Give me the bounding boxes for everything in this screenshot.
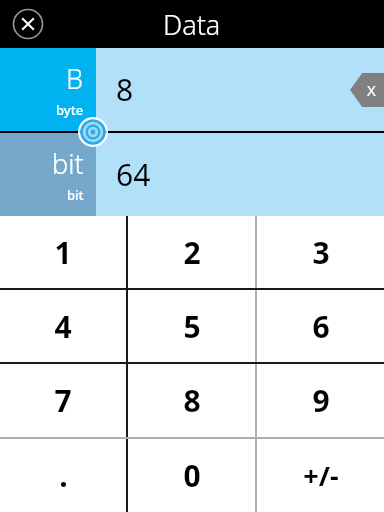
button[interactable]: 0 xyxy=(128,439,255,512)
button[interactable]: Swap units xyxy=(78,117,108,147)
button[interactable]: Delete xyxy=(350,73,384,107)
button[interactable]: 7 xyxy=(0,364,126,437)
button[interactable]: 9 xyxy=(257,364,384,437)
staticText: 5 xyxy=(183,306,201,347)
staticText: bit xyxy=(52,145,84,182)
staticText: 7 xyxy=(54,380,72,421)
staticText: 1 xyxy=(54,232,72,273)
button[interactable]: 4 xyxy=(0,290,126,362)
staticText: X xyxy=(367,80,376,100)
staticText: 64 xyxy=(116,154,151,195)
staticText: +/- xyxy=(303,457,339,494)
button[interactable]: . xyxy=(0,439,126,512)
button[interactable]: 8 xyxy=(128,364,255,437)
staticText: B xyxy=(66,60,84,97)
staticText: 6 xyxy=(312,306,330,347)
staticText: Data xyxy=(163,6,221,43)
button[interactable]: B xyxy=(0,48,96,131)
staticText: 8 xyxy=(183,380,201,421)
button[interactable]: +/- xyxy=(257,439,384,512)
staticText: 8 xyxy=(116,69,134,110)
button[interactable]: 6 xyxy=(257,290,384,362)
staticText: 4 xyxy=(54,306,72,347)
staticText: 9 xyxy=(312,380,330,421)
button[interactable]: 1 xyxy=(0,216,126,288)
staticText: 3 xyxy=(312,232,330,273)
button[interactable]: Close xyxy=(10,6,46,42)
button[interactable]: 3 xyxy=(257,216,384,288)
button[interactable]: 64 xyxy=(96,133,384,216)
button[interactable]: 8 xyxy=(96,48,384,131)
button[interactable]: bit xyxy=(0,133,96,216)
staticText: byte xyxy=(56,101,84,119)
staticText: bit xyxy=(67,186,84,204)
button[interactable]: 5 xyxy=(128,290,255,362)
button[interactable]: 2 xyxy=(128,216,255,288)
staticText: 2 xyxy=(183,232,201,273)
staticText: 0 xyxy=(183,455,201,496)
staticText: . xyxy=(59,455,68,496)
